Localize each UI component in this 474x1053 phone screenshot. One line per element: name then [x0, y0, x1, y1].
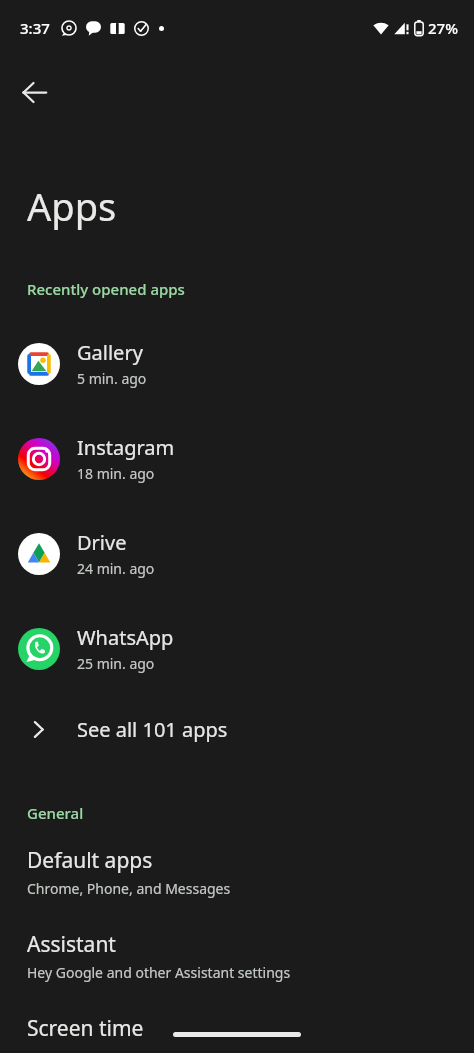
staticText: 18 min. ago — [77, 464, 155, 483]
button[interactable]: WhatsApp — [0, 601, 474, 696]
button[interactable]: Instagram — [0, 411, 474, 506]
button[interactable]: Assistant — [0, 928, 474, 984]
staticText: Chrome, Phone, and Messages — [27, 879, 231, 898]
staticText: Hey Google and other Assistant settings — [27, 963, 291, 982]
staticText: 25 min. ago — [77, 654, 155, 673]
staticText: 27% — [428, 18, 458, 38]
staticText: Assistant — [27, 930, 116, 959]
staticText: Recently opened apps — [27, 279, 185, 299]
button[interactable]: Screen time — [0, 1012, 474, 1045]
button[interactable]: Default apps — [0, 844, 474, 900]
button[interactable]: Gallery — [0, 316, 474, 411]
staticText: Gallery — [77, 339, 143, 366]
staticText: 3:37 — [20, 18, 50, 38]
button[interactable]: Drive — [0, 506, 474, 601]
staticText: Default apps — [27, 846, 153, 875]
staticText: Instagram — [77, 434, 175, 461]
staticText: WhatsApp — [77, 624, 174, 651]
staticText: Screen time — [27, 1014, 144, 1043]
staticText: See all 101 apps — [77, 716, 228, 743]
staticText: Apps — [27, 180, 117, 232]
staticText: 5 min. ago — [77, 369, 147, 388]
button[interactable]: Back — [6, 64, 62, 120]
staticText: 24 min. ago — [77, 559, 155, 578]
staticText: General — [27, 803, 84, 823]
button[interactable]: See all 101 apps — [0, 696, 474, 762]
staticText: Drive — [77, 529, 127, 556]
